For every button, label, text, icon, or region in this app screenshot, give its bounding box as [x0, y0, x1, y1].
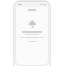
- other: No content: [28, 19, 37, 28]
- button[interactable]: [26, 40, 39, 43]
